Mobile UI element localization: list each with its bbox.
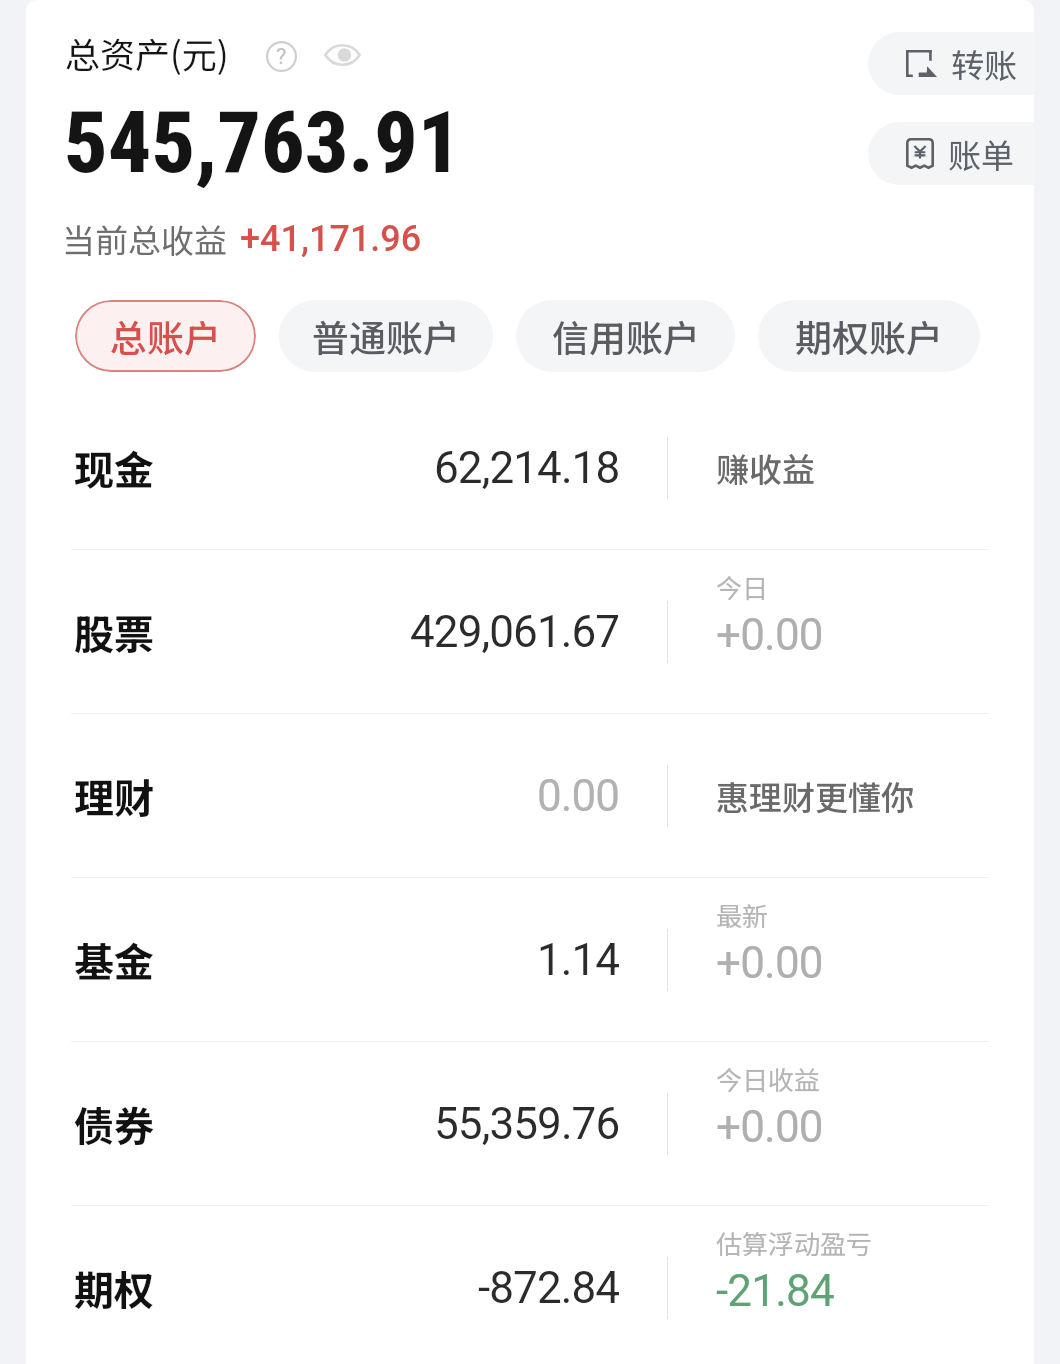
staticText: 总账户 — [110, 309, 221, 363]
button[interactable]: 理财 — [26, 714, 1034, 877]
button[interactable]: 债券 — [26, 1042, 1034, 1205]
button[interactable]: 股票 — [26, 550, 1034, 713]
button[interactable]: Help — [266, 41, 297, 72]
button[interactable]: 信用账户 — [516, 300, 735, 372]
staticText: 估算浮动盈亏 — [716, 1224, 873, 1262]
staticText: 最新 — [716, 896, 769, 934]
staticText: 55,359.76 — [434, 1098, 620, 1150]
staticText: 信用账户 — [552, 309, 700, 363]
staticText: -21.84 — [716, 1265, 834, 1317]
staticText: 债券 — [74, 1095, 154, 1153]
staticText: 现金 — [74, 439, 154, 497]
staticText: 1.14 — [537, 934, 620, 986]
staticText: 545,763.91 — [64, 92, 462, 193]
staticText: 基金 — [74, 931, 154, 989]
staticText: 理财 — [74, 767, 154, 825]
staticText: +0.00 — [716, 937, 823, 989]
staticText: 今日收益 — [716, 1060, 821, 1098]
button[interactable]: Toggle balance visibility — [324, 36, 361, 74]
staticText: 赚收益 — [716, 444, 815, 492]
staticText: ? — [276, 44, 287, 70]
staticText: 期权 — [74, 1259, 154, 1317]
staticText: 期权账户 — [795, 309, 943, 363]
button[interactable]: 基金 — [26, 878, 1034, 1041]
button[interactable]: Bills — [868, 122, 1034, 185]
button[interactable]: Transfer — [868, 32, 1034, 95]
staticText: 惠理财更懂你 — [716, 772, 914, 820]
staticText: 0.00 — [537, 770, 620, 822]
staticText: +41,171.96 — [240, 218, 422, 260]
staticText: 今日 — [716, 568, 769, 606]
staticText: +0.00 — [716, 609, 823, 661]
staticText: 62,214.18 — [434, 442, 620, 494]
staticText: 普通账户 — [312, 309, 460, 363]
staticText: +0.00 — [716, 1101, 823, 1153]
staticText: 账单 — [948, 130, 1014, 178]
button[interactable]: 现金 — [26, 386, 1034, 549]
staticText: 转账 — [951, 40, 1017, 88]
staticText: -872.84 — [478, 1262, 620, 1314]
button[interactable]: 期权 — [26, 1206, 1034, 1364]
button[interactable]: 总账户 — [75, 300, 256, 372]
button[interactable]: 普通账户 — [279, 300, 493, 372]
staticText: 总资产(元) — [65, 27, 229, 78]
staticText: 当前总收益 — [62, 215, 227, 263]
staticText: 股票 — [74, 603, 154, 661]
button[interactable]: 期权账户 — [758, 300, 980, 372]
staticText: 429,061.67 — [410, 606, 620, 658]
